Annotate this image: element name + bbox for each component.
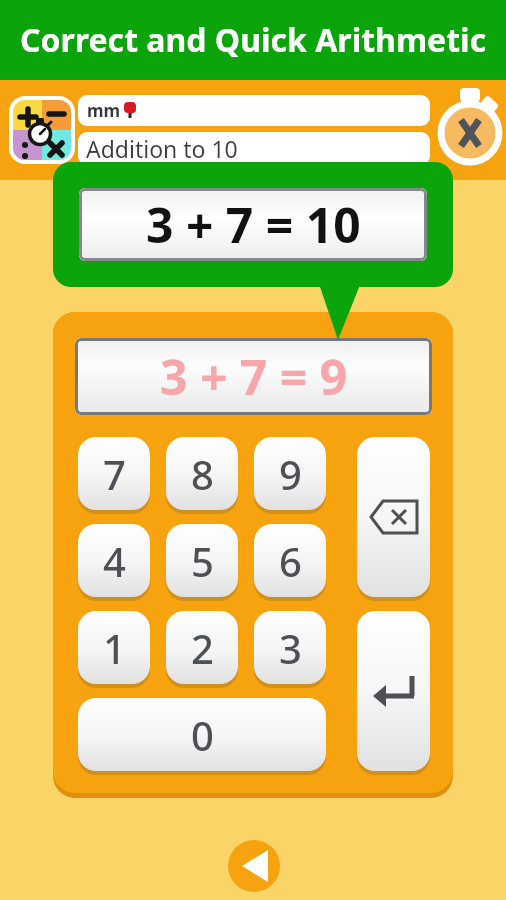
button[interactable] <box>357 611 430 771</box>
button[interactable] <box>357 437 430 597</box>
staticText: Correct and Quick Arithmetic <box>20 18 487 62</box>
button[interactable]: 5 <box>166 524 238 597</box>
staticText: 7 <box>103 447 126 501</box>
button[interactable]: 3 <box>254 611 326 684</box>
staticText: 0 <box>191 708 214 762</box>
button[interactable]: 6 <box>254 524 326 597</box>
button[interactable]: 9 <box>254 437 326 510</box>
staticText: 3 + 7 = 9 <box>160 344 348 409</box>
staticText: 6 <box>279 534 302 588</box>
staticText: 5 <box>191 534 214 588</box>
button[interactable] <box>228 840 280 892</box>
staticText: 1 <box>103 621 126 675</box>
button[interactable]: 0 <box>78 698 326 771</box>
button[interactable]: 2 <box>166 611 238 684</box>
staticText: 3 + 7 = 10 <box>146 192 361 257</box>
button[interactable]: Addition to 10 <box>78 132 430 165</box>
staticText: 3 <box>279 621 302 675</box>
staticText: mm <box>87 99 121 122</box>
staticText: 9 <box>279 447 302 501</box>
button[interactable]: 7 <box>78 437 150 510</box>
button[interactable]: mm <box>78 95 430 126</box>
button[interactable]: 1 <box>78 611 150 684</box>
staticText: 8 <box>191 447 214 501</box>
staticText: 2 <box>191 621 214 675</box>
staticText: 4 <box>103 534 126 588</box>
button[interactable]: 4 <box>78 524 150 597</box>
button[interactable]: 8 <box>166 437 238 510</box>
staticText: Addition to 10 <box>86 133 238 164</box>
button[interactable] <box>433 83 506 167</box>
